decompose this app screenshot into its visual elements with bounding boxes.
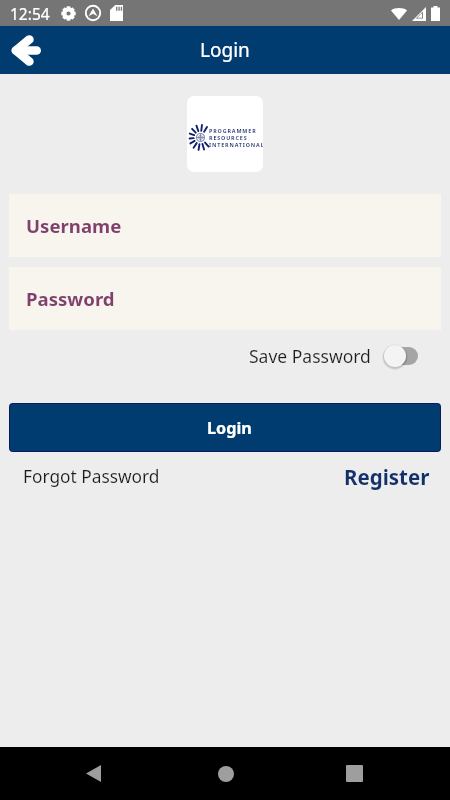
button[interactable]: Forgot Password <box>23 465 160 489</box>
staticText: Username <box>26 213 122 238</box>
button[interactable]: Back <box>70 750 117 797</box>
staticText: RESOURCES <box>209 134 248 141</box>
button[interactable]: Username <box>9 194 441 257</box>
button[interactable]: Login <box>10 404 440 451</box>
staticText: Save Password <box>249 344 371 368</box>
button[interactable]: Register <box>344 463 430 491</box>
button[interactable]: Save Password toggle <box>382 343 418 369</box>
staticText: PROGRAMMER <box>209 127 257 134</box>
staticText: Login <box>207 417 252 439</box>
staticText: 12:54 <box>10 3 50 24</box>
staticText: INTERNATIONAL <box>209 141 263 148</box>
button[interactable]: Home <box>202 750 249 797</box>
button[interactable]: Password <box>9 267 441 330</box>
button[interactable]: Back <box>0 26 52 74</box>
staticText: Password <box>26 286 115 311</box>
staticText: Login <box>200 37 250 63</box>
button[interactable]: Save Password <box>249 343 418 369</box>
button[interactable]: Recents <box>331 750 378 797</box>
